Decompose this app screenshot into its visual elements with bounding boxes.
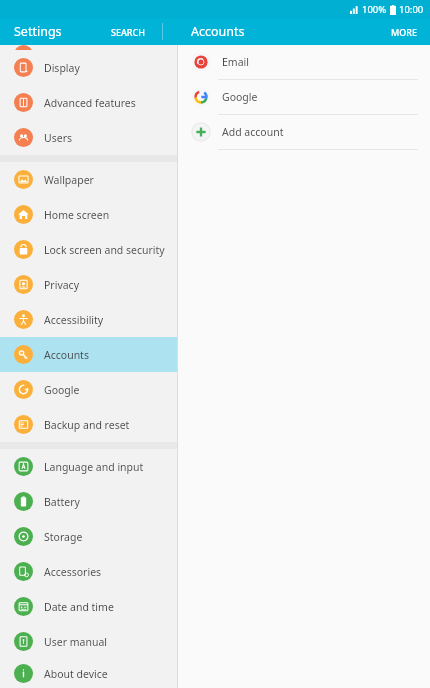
button[interactable]: User manual (0, 624, 177, 659)
button[interactable]: Storage (0, 519, 177, 554)
button[interactable]: Battery (0, 484, 177, 519)
staticText: Accessories (44, 565, 102, 579)
button[interactable]: Display (0, 50, 177, 85)
staticText: Email (222, 55, 249, 69)
button[interactable]: Google (178, 80, 430, 114)
button[interactable]: About device (0, 659, 177, 688)
staticText: MORE (391, 26, 418, 38)
staticText: Google (44, 383, 80, 397)
staticText: Accounts (44, 348, 89, 362)
button[interactable]: Backup and reset (0, 407, 177, 442)
button[interactable]: Accounts (0, 337, 177, 372)
staticText: Backup and reset (44, 418, 130, 432)
button[interactable]: Privacy (0, 267, 177, 302)
staticText: SEARCH (111, 26, 145, 38)
staticText: About device (44, 667, 108, 681)
staticText: 100% (362, 3, 387, 16)
staticText: Advanced features (44, 96, 136, 110)
button[interactable]: Users (0, 120, 177, 155)
staticText: 10:00 (399, 3, 424, 16)
button[interactable]: Language and input (0, 449, 177, 484)
button[interactable]: Advanced features (0, 85, 177, 120)
staticText: Storage (44, 530, 83, 544)
staticText: Lock screen and security (44, 243, 165, 257)
button[interactable]: Accessibility (0, 302, 177, 337)
staticText: Accessibility (44, 313, 104, 327)
button[interactable]: Home screen (0, 197, 177, 232)
button[interactable]: Date and time (0, 589, 177, 624)
button[interactable]: Lock screen and security (0, 232, 177, 267)
staticText: Wallpaper (44, 173, 94, 187)
staticText: Accounts (191, 23, 245, 40)
staticText: Users (44, 131, 72, 145)
staticText: Date and time (44, 600, 114, 614)
staticText: Privacy (44, 278, 80, 292)
staticText: Google (222, 90, 258, 104)
staticText: Settings (14, 23, 62, 40)
staticText: Add account (222, 125, 284, 139)
staticText: Home screen (44, 208, 110, 222)
button[interactable]: Add account (178, 115, 430, 149)
staticText: Language and input (44, 460, 144, 474)
button[interactable]: Google (0, 372, 177, 407)
button[interactable]: Accessories (0, 554, 177, 589)
button[interactable]: MORE (387, 22, 422, 42)
button[interactable]: SEARCH (107, 22, 149, 42)
staticText: Battery (44, 495, 80, 509)
staticText: User manual (44, 635, 107, 649)
button[interactable]: Email (178, 45, 430, 79)
button[interactable]: Wallpaper (0, 162, 177, 197)
staticText: Display (44, 61, 80, 75)
